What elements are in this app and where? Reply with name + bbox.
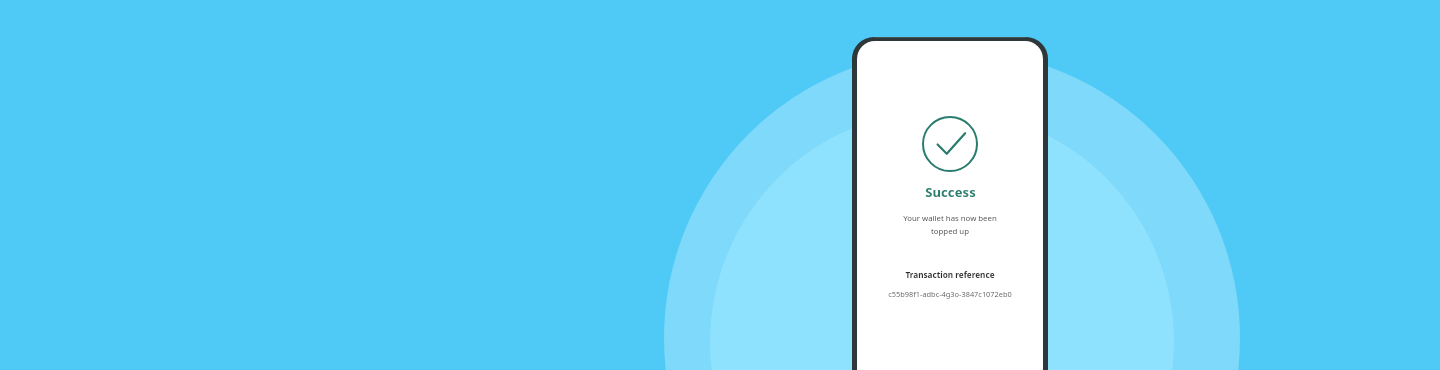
staticText: Transaction reference: [857, 269, 1043, 280]
button[interactable]: Success: [921, 115, 979, 173]
staticText: Success: [925, 183, 976, 201]
staticText: Your wallet has now been topped up: [857, 213, 1043, 236]
staticText: c55b98f1-adbc-4g3o-3847c1072eb0: [857, 289, 1043, 299]
